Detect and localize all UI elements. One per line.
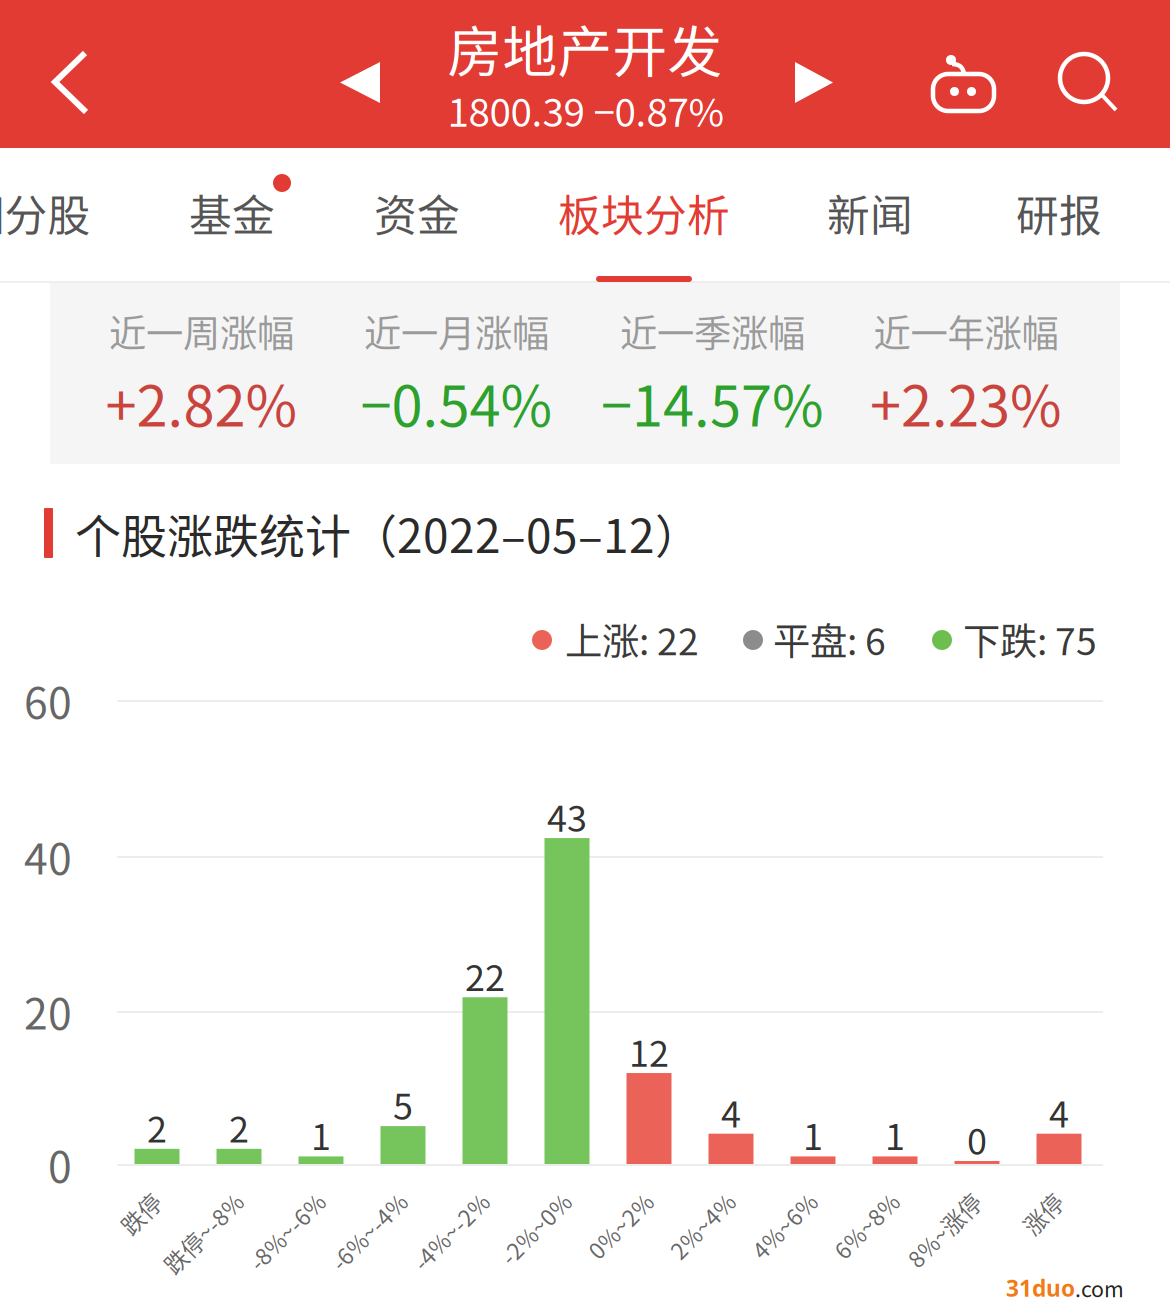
staticText: 研报: [1016, 182, 1102, 244]
button[interactable]: Next sector: [755, 0, 875, 148]
staticText: 5: [393, 1078, 413, 1130]
staticText: 2: [229, 1101, 249, 1153]
button[interactable]: Search: [1030, 0, 1160, 148]
staticText: 1: [311, 1108, 331, 1160]
button[interactable]: Assistant: [899, 0, 1029, 148]
staticText: 4%~6%: [732, 1181, 813, 1213]
staticText: 2: [147, 1101, 167, 1153]
staticText: 60: [24, 669, 72, 731]
button[interactable]: 细分股: [0, 148, 101, 280]
staticText: 4: [1049, 1086, 1069, 1138]
staticText: -8%~-6%: [224, 1181, 321, 1213]
staticText: 下跌: 75: [963, 612, 1097, 666]
staticText: 近一年涨幅: [873, 304, 1058, 358]
staticText: 1: [885, 1108, 905, 1160]
button[interactable]: 新闻: [805, 148, 935, 280]
staticText: +2.82%: [105, 361, 297, 443]
staticText: 涨停: [1013, 1181, 1059, 1213]
button[interactable]: Back: [0, 0, 140, 148]
staticText: 近一月涨幅: [364, 304, 549, 358]
staticText: 跌停: [111, 1181, 157, 1213]
staticText: 12: [629, 1025, 669, 1077]
staticText: 0%~2%: [568, 1181, 649, 1213]
staticText: 31duo: [1006, 1273, 1075, 1303]
staticText: .com: [1075, 1273, 1124, 1303]
staticText: 板块分析: [558, 182, 730, 244]
staticText: 个股涨跌统计（2022–05–12）: [75, 500, 701, 566]
staticText: 细分股: [0, 182, 90, 244]
staticText: 43: [547, 790, 587, 842]
staticText: 1800.39 −0.87%: [447, 82, 724, 138]
staticText: −0.54%: [360, 361, 552, 443]
staticText: 平盘: 6: [773, 612, 886, 666]
staticText: 跌停~-8%: [138, 1181, 239, 1213]
button[interactable]: 资金: [352, 148, 482, 280]
staticText: 22: [465, 949, 505, 1001]
staticText: 6%~8%: [814, 1181, 895, 1213]
staticText: 40: [24, 825, 72, 887]
staticText: 2%~4%: [650, 1181, 731, 1213]
staticText: -6%~-4%: [306, 1181, 403, 1213]
staticText: 20: [24, 980, 72, 1042]
staticText: 新闻: [827, 182, 913, 244]
staticText: 近一周涨幅: [109, 304, 294, 358]
staticText: −14.57%: [601, 361, 824, 443]
staticText: -4%~-2%: [388, 1181, 485, 1213]
staticText: -2%~0%: [478, 1181, 567, 1213]
button[interactable]: 板块分析: [549, 148, 739, 280]
staticText: 近一季涨幅: [620, 304, 805, 358]
staticText: 基金: [189, 182, 275, 244]
staticText: 房地产开发: [447, 8, 722, 88]
staticText: 0: [48, 1133, 72, 1195]
button[interactable]: 基金: [167, 148, 297, 280]
staticText: 0: [967, 1113, 987, 1165]
staticText: 4: [721, 1086, 741, 1138]
staticText: 1: [803, 1108, 823, 1160]
button[interactable]: 研报: [994, 148, 1124, 280]
staticText: 资金: [374, 182, 460, 244]
staticText: 上涨: 22: [565, 612, 699, 666]
staticText: 8%~涨停: [884, 1181, 977, 1213]
staticText: +2.23%: [870, 361, 1062, 443]
button[interactable]: Previous sector: [300, 0, 420, 148]
